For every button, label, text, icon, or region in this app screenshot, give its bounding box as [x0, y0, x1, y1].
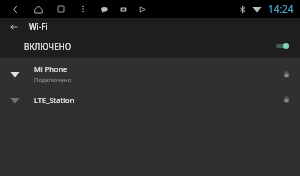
- button[interactable]: Back: [6, 0, 24, 18]
- staticText: Mi Phone: [34, 64, 68, 74]
- button[interactable]: Messages: [96, 1, 112, 17]
- button[interactable]: Home: [29, 0, 47, 18]
- staticText: ВКЛЮЧЕНО: [24, 41, 72, 52]
- button[interactable]: Play: [134, 1, 150, 17]
- staticText: Подключено: [34, 76, 72, 84]
- staticText: LTE_Station: [34, 95, 75, 105]
- button[interactable]: LTE_Station: [0, 88, 300, 111]
- button[interactable]: ВКЛЮЧЕНО: [0, 35, 300, 57]
- button[interactable]: Screenshot: [115, 1, 131, 17]
- button[interactable]: Navigate up: [7, 20, 21, 34]
- button[interactable]: More options: [74, 0, 92, 18]
- button[interactable]: Recent apps: [52, 0, 70, 18]
- staticText: Wi-Fi: [29, 21, 48, 32]
- staticText: 14:24: [268, 2, 294, 16]
- button[interactable]: Mi Phone: [0, 60, 300, 88]
